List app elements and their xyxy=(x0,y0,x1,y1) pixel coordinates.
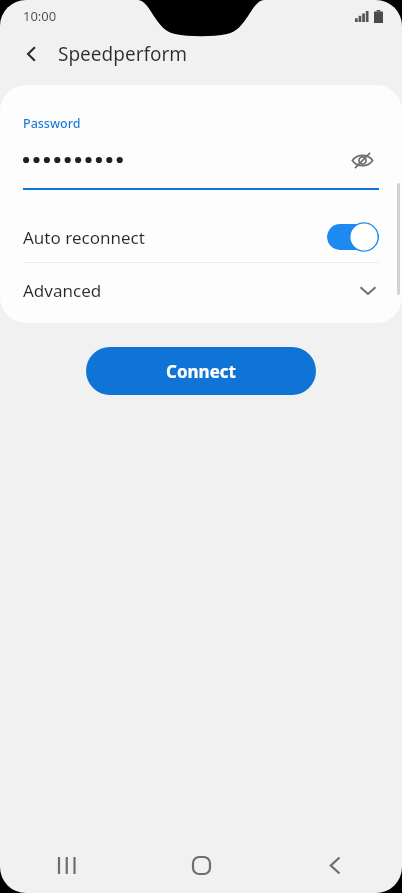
button[interactable]: Home xyxy=(134,837,268,893)
staticText: Connect xyxy=(166,360,236,383)
button[interactable]: Advanced xyxy=(0,263,402,317)
staticText: Advanced xyxy=(23,279,357,302)
staticText: 10:00 xyxy=(23,7,57,25)
button[interactable] xyxy=(327,222,379,252)
staticText: Speedperform xyxy=(58,41,188,67)
button[interactable]: Auto reconnect xyxy=(0,212,402,262)
staticText: Auto reconnect xyxy=(23,226,327,249)
staticText: Password xyxy=(23,115,81,132)
button[interactable]: Back xyxy=(268,837,402,893)
button[interactable]: Connect xyxy=(86,347,316,395)
button[interactable]: Back xyxy=(14,36,50,72)
button[interactable]: Show password xyxy=(345,143,379,177)
button[interactable]: Recent apps xyxy=(0,837,134,893)
